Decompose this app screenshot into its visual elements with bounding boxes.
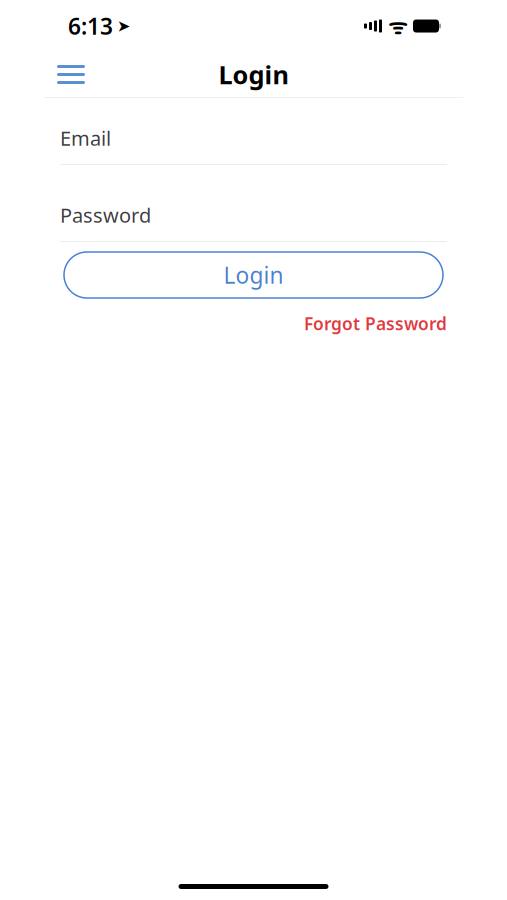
staticText: Password [60, 202, 151, 228]
button[interactable]: Password [60, 189, 447, 242]
button[interactable]: Forgot Password [304, 306, 447, 341]
staticText: Forgot Password [304, 312, 447, 335]
staticText: ᯤ [388, 12, 407, 40]
button[interactable]: Email [60, 112, 447, 165]
staticText: Email [60, 125, 111, 151]
staticText: ➤ [117, 17, 130, 35]
staticText: Login [223, 260, 283, 290]
staticText: 6:13 [68, 11, 113, 41]
staticText: Login [218, 58, 288, 91]
button[interactable]: Login [64, 252, 443, 298]
button[interactable]: Menu [49, 55, 93, 94]
